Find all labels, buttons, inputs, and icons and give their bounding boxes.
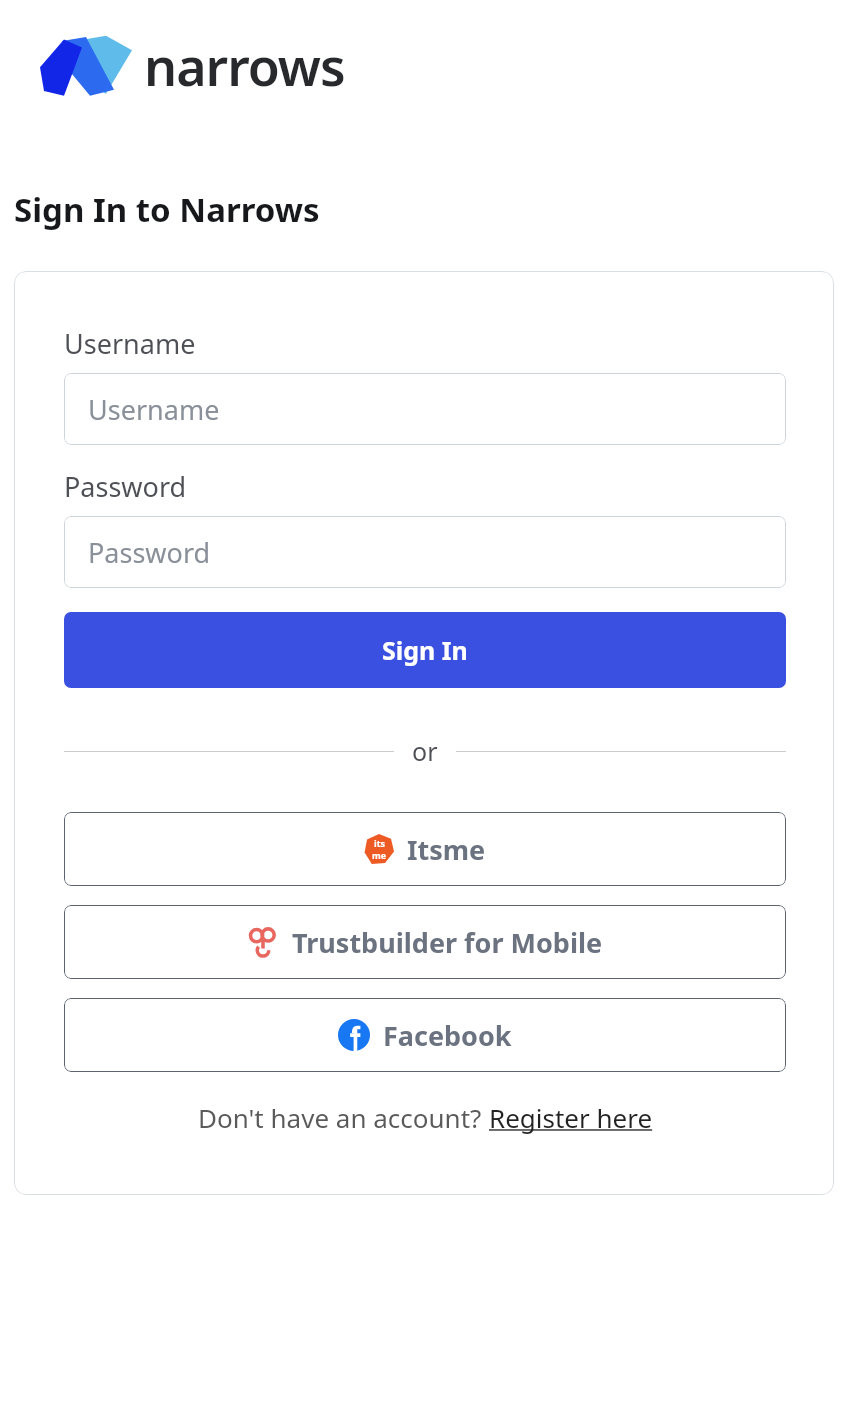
button[interactable]: Sign In	[64, 612, 786, 688]
button[interactable]: Facebook	[64, 998, 786, 1072]
staticText: Don't have an account?	[198, 1100, 489, 1135]
staticText: Itsme	[407, 831, 486, 868]
staticText: Trustbuilder for Mobile	[292, 924, 603, 961]
button[interactable]: itsme	[64, 812, 786, 886]
staticText: Sign In	[382, 633, 468, 667]
staticText: Username	[64, 325, 196, 362]
staticText: Sign In to Narrows	[14, 187, 320, 232]
button[interactable]: Trustbuilder	[64, 905, 786, 979]
button[interactable]: Password	[64, 516, 786, 588]
button[interactable]: Register here	[489, 1100, 653, 1135]
staticText: Facebook	[383, 1017, 512, 1054]
staticText: Password	[64, 468, 187, 505]
other: Facebook	[338, 1019, 370, 1051]
staticText: its	[374, 837, 386, 849]
staticText: or	[412, 734, 438, 768]
other: itsme	[364, 834, 394, 864]
staticText: me	[372, 849, 387, 861]
other: Trustbuilder	[247, 926, 279, 958]
staticText: narrows	[144, 30, 345, 101]
staticText: Username	[88, 391, 220, 428]
staticText: Register here	[489, 1100, 653, 1135]
button[interactable]: Username	[64, 373, 786, 445]
staticText: Password	[88, 534, 211, 571]
